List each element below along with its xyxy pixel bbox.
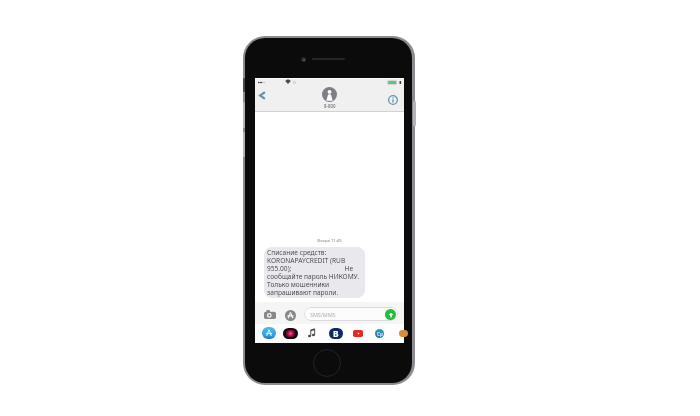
button[interactable]: Back — [255, 87, 271, 111]
button[interactable]: Photos — [281, 324, 300, 342]
button[interactable]: YouTube — [348, 324, 367, 342]
button[interactable]: SMS/MMS — [304, 307, 398, 321]
button[interactable]: VTB — [326, 324, 345, 342]
button[interactable]: App — [394, 324, 412, 342]
staticText: Вчера 11:45 — [255, 238, 404, 244]
button[interactable]: Send — [385, 309, 396, 320]
button[interactable]: App Store — [259, 324, 278, 342]
staticText: 8-800 — [324, 103, 336, 109]
button[interactable]: Списание средств: KORONAPAYCREDIT (RUB 9… — [264, 247, 365, 298]
staticText: Списание средств: KORONAPAYCREDIT (RUB 9… — [267, 248, 359, 297]
staticText: Cp — [377, 331, 383, 337]
staticText: B — [333, 328, 339, 339]
button[interactable]: 8-800 — [322, 87, 337, 109]
button[interactable]: Camera — [261, 307, 278, 322]
staticText: SMS/MMS — [310, 311, 336, 318]
button[interactable]: Music — [302, 324, 321, 342]
button[interactable]: App drawer — [285, 310, 296, 321]
button[interactable]: Details — [385, 88, 401, 109]
button[interactable]: Messenger — [370, 324, 389, 342]
